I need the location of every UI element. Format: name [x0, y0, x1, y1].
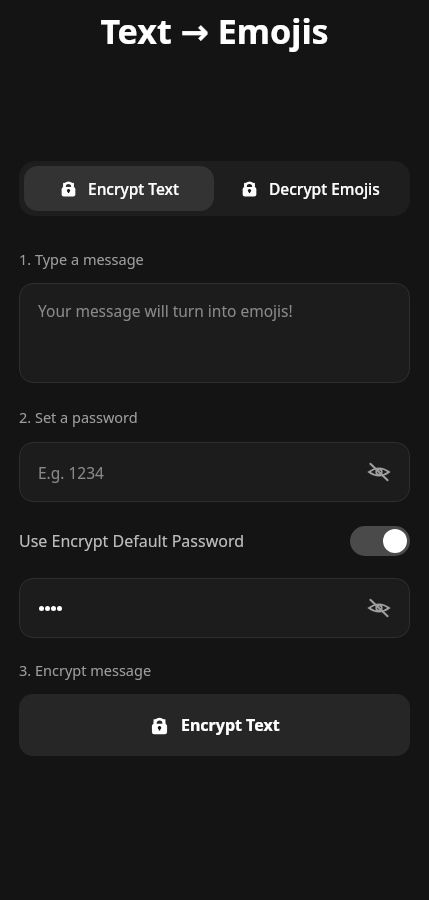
staticText: 1. Type a message [19, 249, 144, 269]
button[interactable]: Your message will turn into emojis! [19, 283, 410, 383]
button[interactable]: Show password [19, 578, 410, 638]
button[interactable]: Encrypt Text [24, 166, 214, 211]
staticText: Encrypt Text [88, 178, 179, 199]
staticText: Your message will turn into emojis! [38, 300, 293, 321]
staticText: Decrypt Emojis [269, 178, 380, 199]
button[interactable]: Encrypt Text [19, 694, 410, 756]
button[interactable]: E.g. 1234 [19, 442, 410, 502]
button[interactable]: Show password [361, 454, 397, 490]
staticText: Text → Emojis [100, 8, 329, 54]
button[interactable]: Show password [361, 590, 397, 626]
staticText: Encrypt Text [181, 714, 280, 736]
staticText: E.g. 1234 [38, 462, 104, 483]
staticText: 3. Encrypt message [19, 660, 152, 680]
button[interactable]: Use Encrypt Default Password [19, 526, 410, 556]
staticText: 2. Set a password [19, 407, 138, 427]
button[interactable]: Decrypt Emojis [214, 166, 405, 211]
staticText: Use Encrypt Default Password [19, 530, 350, 552]
